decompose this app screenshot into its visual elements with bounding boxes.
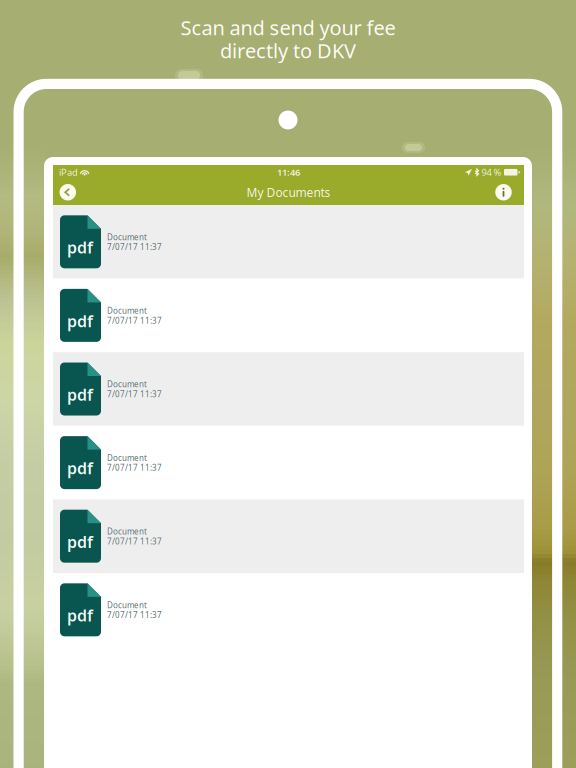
staticText: pdf: [67, 384, 93, 405]
button[interactable]: Back: [54, 179, 81, 205]
staticText: pdf: [67, 237, 93, 258]
button[interactable]: pdf: [53, 499, 524, 573]
staticText: My Documents: [246, 184, 330, 200]
staticText: pdf: [67, 605, 93, 626]
staticText: pdf: [67, 310, 93, 331]
staticText: 7/07/17 11:37: [107, 462, 162, 473]
staticText: Document: [107, 305, 147, 316]
staticText: 7/07/17 11:37: [107, 242, 162, 252]
button[interactable]: pdf: [53, 426, 524, 499]
staticText: 94 %: [481, 166, 501, 178]
button[interactable]: pdf: [53, 279, 524, 352]
staticText: 7/07/17 11:37: [107, 315, 162, 326]
staticText: pdf: [67, 531, 93, 552]
staticText: 7/07/17 11:37: [107, 389, 162, 399]
staticText: Document: [107, 232, 147, 242]
staticText: Document: [107, 452, 147, 463]
button[interactable]: pdf: [53, 573, 524, 647]
staticText: 11:46: [277, 166, 300, 178]
staticText: pdf: [67, 457, 93, 479]
button[interactable]: pdf: [53, 205, 524, 279]
staticText: directly to DKV: [220, 37, 356, 64]
button[interactable]: Info: [490, 179, 517, 205]
staticText: Document: [107, 600, 147, 610]
button[interactable]: pdf: [53, 352, 524, 426]
staticText: Document: [107, 526, 147, 537]
staticText: iPad: [59, 166, 78, 178]
staticText: Scan and send your fee: [180, 14, 395, 41]
staticText: Document: [107, 379, 147, 389]
staticText: 7/07/17 11:37: [107, 610, 162, 620]
staticText: 7/07/17 11:37: [107, 536, 162, 547]
